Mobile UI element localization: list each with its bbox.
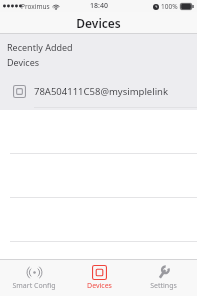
staticText: 100%: [161, 2, 178, 11]
button[interactable]: Smart Config: [4, 261, 64, 294]
staticText: Devices: [87, 281, 112, 291]
staticText: Smart Config: [12, 281, 56, 291]
button[interactable]: [0, 154, 197, 198]
button[interactable]: [0, 110, 197, 154]
staticText: 18:40: [90, 1, 108, 11]
staticText: Recently Added: [7, 41, 73, 53]
staticText: Settings: [150, 281, 177, 291]
button[interactable]: [0, 198, 197, 242]
button[interactable]: Settings: [133, 261, 193, 294]
staticText: Devices: [76, 15, 121, 31]
staticText: 78A504111C58@mysimplelink: [34, 85, 169, 98]
staticText: Devices: [7, 56, 40, 68]
staticText: Proximus: [21, 2, 50, 11]
button[interactable]: Devices: [69, 261, 129, 294]
button[interactable]: 78A504111C58@mysimplelink: [0, 77, 197, 105]
